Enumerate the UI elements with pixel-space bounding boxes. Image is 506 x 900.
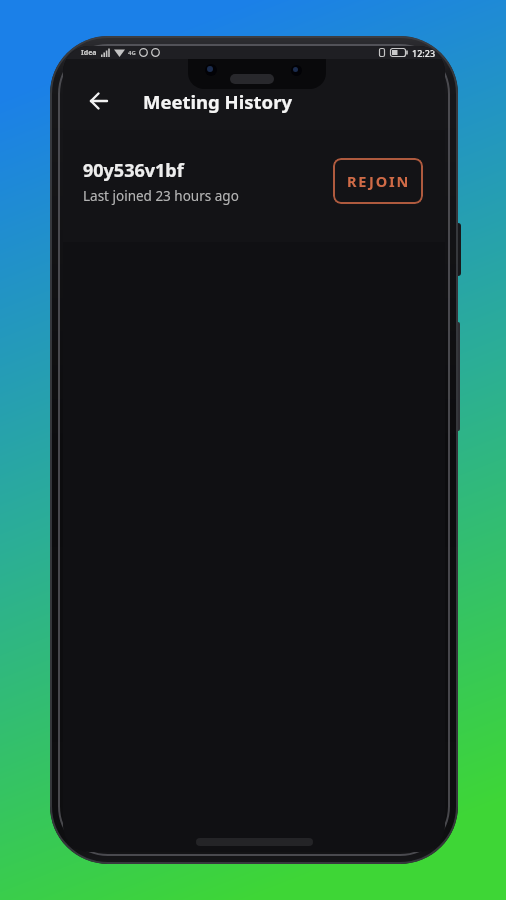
- staticText: 12:23: [412, 47, 436, 59]
- staticText: 90y536v1bf: [83, 158, 184, 183]
- button[interactable]: [63, 130, 445, 242]
- staticText: Meeting History: [143, 89, 293, 114]
- button[interactable]: REJOIN: [333, 158, 423, 204]
- staticText: Idea: [81, 48, 97, 58]
- button[interactable]: [85, 87, 113, 115]
- staticText: 4G: [128, 49, 136, 57]
- staticText: REJOIN: [347, 171, 410, 191]
- staticText: Last joined 23 hours ago: [83, 187, 239, 205]
